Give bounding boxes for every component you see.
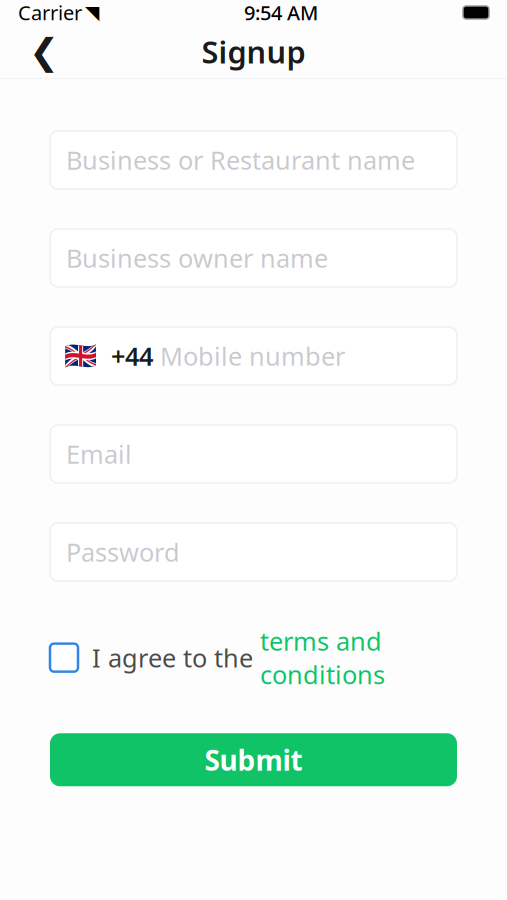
staticText: Email (66, 437, 132, 471)
staticText: terms and conditions (260, 624, 385, 691)
button[interactable]: Business or Restaurant name (50, 131, 457, 189)
staticText: +44 (97, 339, 160, 373)
staticText: Business owner name (66, 241, 328, 275)
button[interactable]: Email (50, 425, 457, 483)
staticText: Submit (204, 741, 302, 778)
button[interactable]: 🇬🇧 (50, 327, 457, 385)
button[interactable]: Back (20, 27, 68, 75)
button[interactable]: Business owner name (50, 229, 457, 287)
staticText: ◥ (85, 2, 99, 23)
button[interactable]: Password (50, 523, 457, 581)
staticText: 🇬🇧 (64, 341, 97, 371)
button[interactable]: Submit (50, 733, 457, 786)
button[interactable]: terms and conditions (260, 624, 385, 691)
button[interactable]: I agree to the terms and conditions (50, 644, 78, 672)
staticText: ❮ (29, 31, 59, 72)
staticText: Password (66, 535, 180, 569)
staticText (82, 4, 85, 21)
staticText: Signup (201, 31, 305, 72)
staticText: 9:54 AM (244, 0, 318, 26)
staticText: Carrier (18, 0, 82, 26)
staticText: Mobile number (160, 339, 345, 373)
staticText: I agree to the (78, 641, 260, 674)
staticText: Business or Restaurant name (66, 143, 415, 177)
